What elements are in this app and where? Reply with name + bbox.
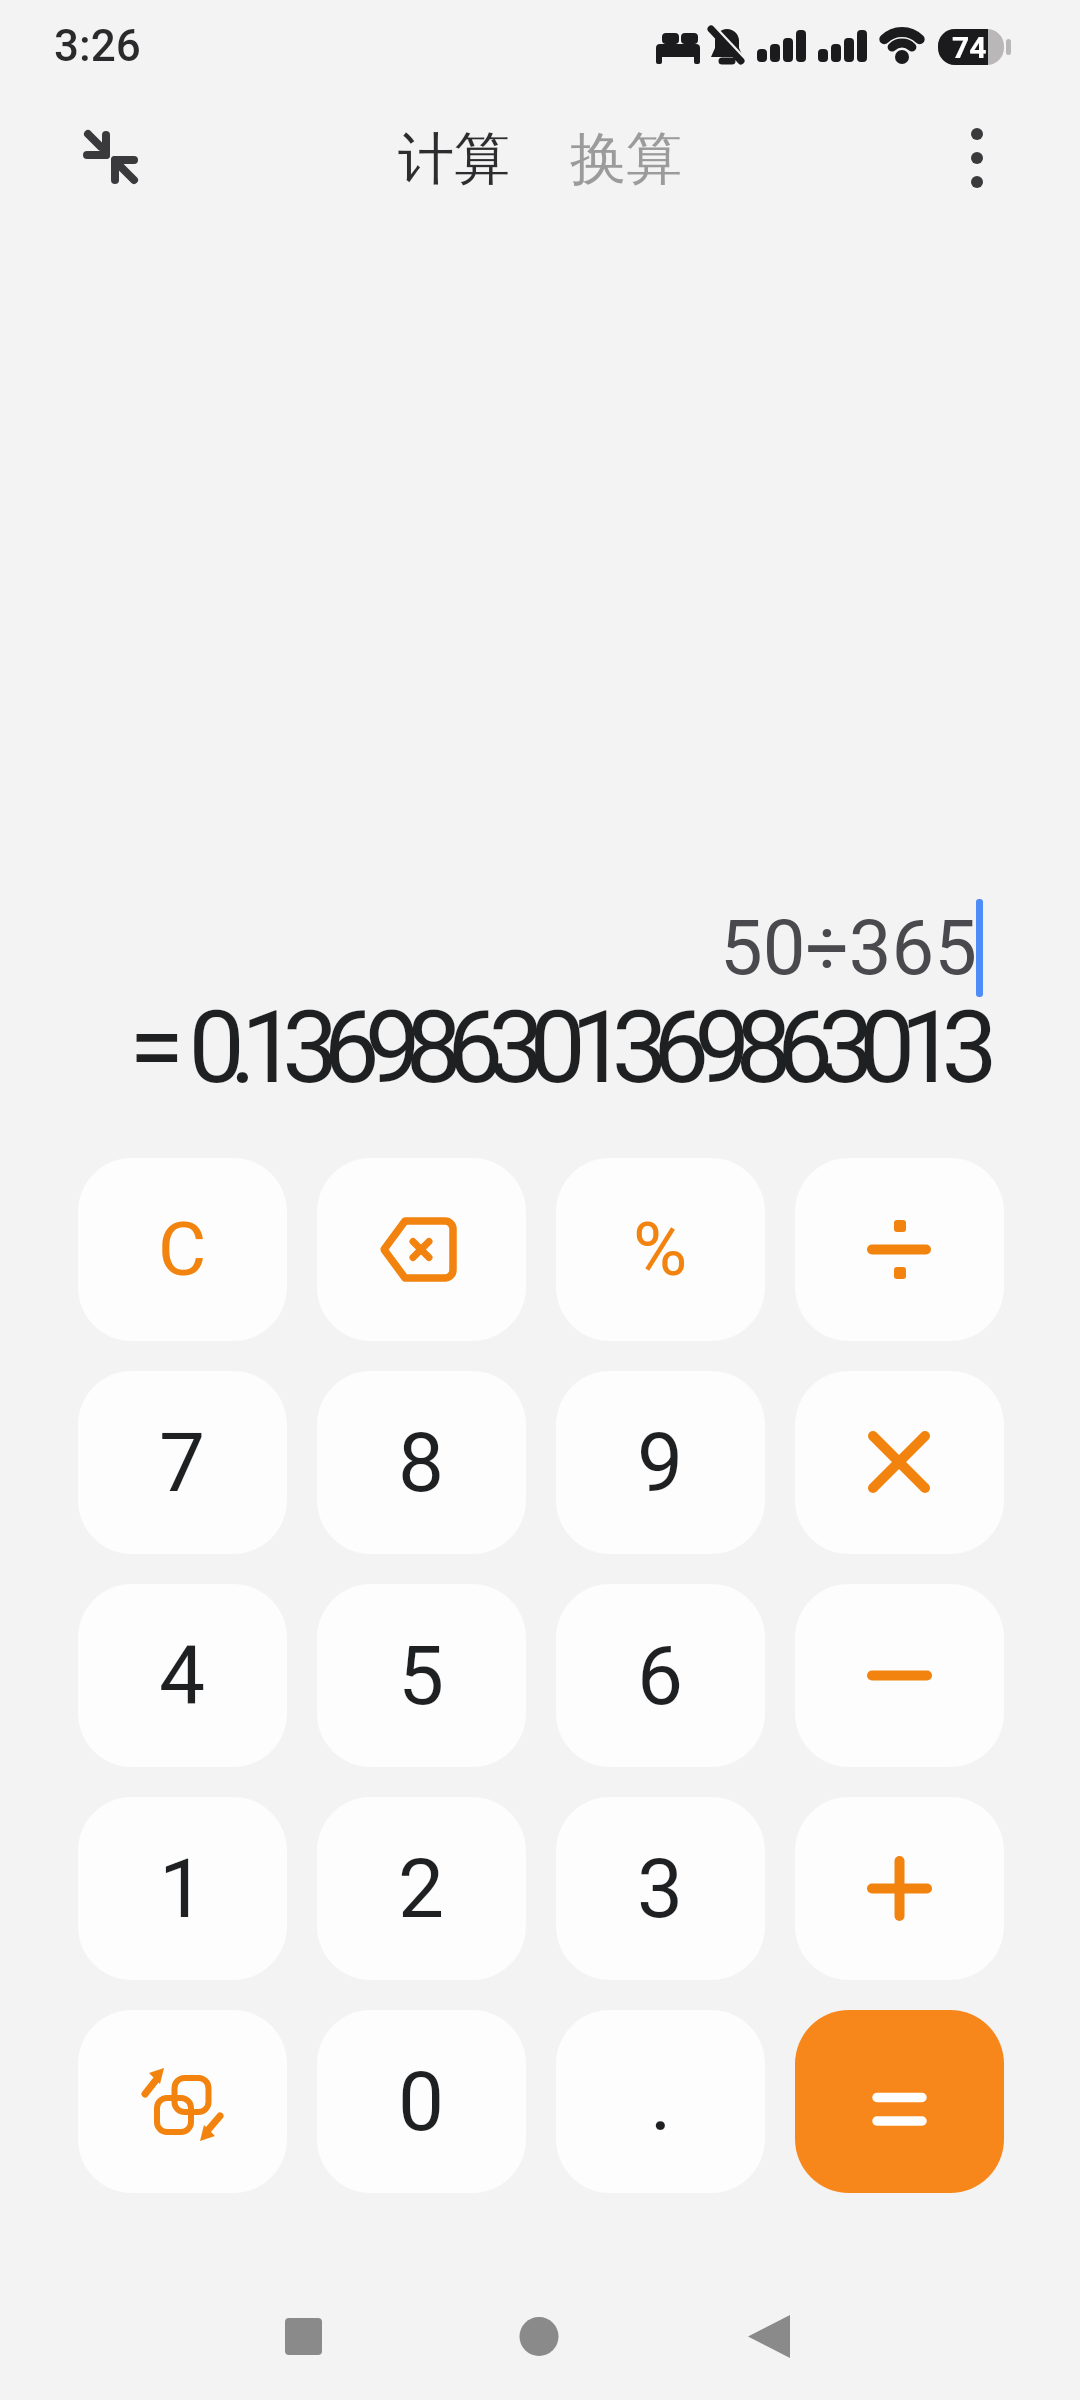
staticText: 6 xyxy=(637,1628,684,1724)
button[interactable]: 0 xyxy=(317,2010,526,2193)
staticText: 5 xyxy=(398,1628,445,1724)
button[interactable] xyxy=(317,1158,526,1341)
button[interactable]: 1 xyxy=(78,1797,287,1980)
staticText: . xyxy=(650,2054,672,2150)
button[interactable]: 7 xyxy=(78,1371,287,1554)
button[interactable]: 4 xyxy=(78,1584,287,1767)
staticText: = 0.136986301369863013 xyxy=(129,989,983,1106)
staticText: % xyxy=(633,1206,688,1293)
button[interactable]: 6 xyxy=(556,1584,765,1767)
button[interactable]: . xyxy=(556,2010,765,2193)
button[interactable]: 换算 xyxy=(570,124,682,195)
button[interactable]: C xyxy=(78,1158,287,1341)
button[interactable] xyxy=(966,127,988,191)
button[interactable] xyxy=(795,1797,1004,1980)
button[interactable] xyxy=(795,1158,1004,1341)
button[interactable] xyxy=(82,128,140,186)
staticText: 4 xyxy=(159,1628,206,1724)
button[interactable] xyxy=(795,1371,1004,1554)
staticText: C xyxy=(158,1206,207,1293)
staticText: 7 xyxy=(159,1415,206,1511)
staticText: 3 xyxy=(637,1841,684,1937)
button[interactable]: 2 xyxy=(317,1797,526,1980)
staticText: 1 xyxy=(159,1841,206,1937)
button[interactable] xyxy=(795,2010,1004,2193)
button[interactable]: 9 xyxy=(556,1371,765,1554)
button[interactable]: 5 xyxy=(317,1584,526,1767)
staticText: 3:26 xyxy=(54,20,141,72)
button[interactable] xyxy=(78,2010,287,2193)
staticText: 74 xyxy=(952,30,987,65)
staticText: 2 xyxy=(398,1841,445,1937)
staticText: 9 xyxy=(637,1415,684,1511)
staticText: 8 xyxy=(398,1415,445,1511)
button[interactable] xyxy=(795,1584,1004,1767)
staticText: 50÷365 xyxy=(720,903,977,992)
button[interactable]: 3 xyxy=(556,1797,765,1980)
button[interactable]: % xyxy=(556,1158,765,1341)
staticText: 0 xyxy=(398,2054,445,2150)
button[interactable]: 计算 xyxy=(398,124,510,195)
button[interactable]: 8 xyxy=(317,1371,526,1554)
